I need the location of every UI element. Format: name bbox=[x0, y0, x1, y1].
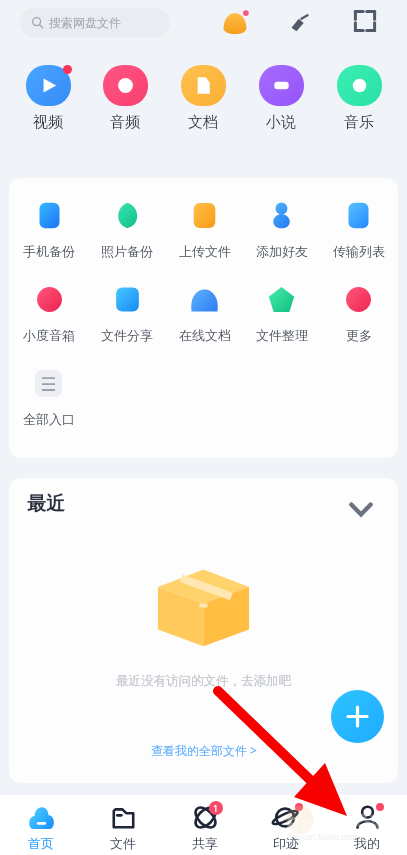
button[interactable]: 文件 bbox=[82, 795, 164, 855]
button[interactable]: 音频 bbox=[86, 43, 164, 148]
staticText: 传输列表 bbox=[333, 243, 385, 259]
button[interactable]: 文档 bbox=[164, 43, 242, 148]
button[interactable]: Clean up bbox=[284, 7, 314, 37]
button[interactable]: 小说 bbox=[242, 43, 320, 148]
staticText: 上传文件 bbox=[179, 243, 231, 259]
staticText: 更多 bbox=[346, 327, 372, 343]
staticText: 搜索网盘文件 bbox=[49, 15, 121, 30]
button[interactable]: 更多 bbox=[320, 286, 397, 343]
button[interactable]: 在线文档 bbox=[166, 286, 243, 343]
button[interactable]: 视频 bbox=[9, 43, 86, 148]
staticText: 共享 bbox=[192, 835, 218, 851]
staticText: 照片备份 bbox=[101, 243, 153, 259]
button[interactable]: 添加好友 bbox=[243, 202, 320, 259]
staticText: 全部入口 bbox=[23, 411, 75, 427]
button[interactable]: 全部入口 bbox=[10, 370, 87, 427]
staticText: 添加好友 bbox=[256, 243, 308, 259]
button[interactable]: 印迹 bbox=[245, 795, 326, 855]
button[interactable]: 传输列表 bbox=[320, 202, 397, 259]
staticText: 文件整理 bbox=[256, 327, 308, 343]
staticText: 我的 bbox=[354, 835, 380, 851]
staticText: 最近 bbox=[27, 492, 65, 516]
button[interactable]: 我的 bbox=[326, 795, 407, 855]
button[interactable]: 文件分享 bbox=[88, 286, 166, 343]
staticText: 文件分享 bbox=[101, 327, 153, 343]
staticText: 1 bbox=[213, 802, 219, 814]
staticText: 首页 bbox=[28, 835, 54, 851]
button[interactable]: 小度音箱 bbox=[10, 286, 88, 343]
staticText: Baidu经验 bbox=[286, 808, 393, 838]
button[interactable]: 首页 bbox=[0, 795, 82, 855]
staticText: 文件 bbox=[110, 835, 136, 851]
staticText: 小度音箱 bbox=[23, 327, 75, 343]
staticText: 查看我的全部文件 > bbox=[151, 742, 257, 758]
button[interactable]: Notifications bbox=[219, 8, 251, 40]
button[interactable]: 手机备份 bbox=[10, 202, 88, 259]
staticText: jingyan.baidu.com bbox=[288, 831, 358, 842]
staticText: 音频 bbox=[110, 113, 140, 132]
button[interactable]: 照片备份 bbox=[88, 202, 166, 259]
button[interactable]: 上传文件 bbox=[166, 202, 243, 259]
button[interactable]: 1 bbox=[164, 795, 245, 855]
staticText: 印迹 bbox=[273, 835, 299, 851]
button[interactable]: 文件整理 bbox=[243, 286, 320, 343]
staticText: 文档 bbox=[188, 113, 218, 132]
staticText: 视频 bbox=[33, 113, 63, 132]
button[interactable]: 搜索网盘文件 bbox=[20, 8, 170, 37]
button[interactable]: Add bbox=[331, 690, 384, 743]
button[interactable]: Scan bbox=[350, 6, 380, 36]
button[interactable]: Expand bbox=[347, 495, 375, 523]
staticText: 音乐 bbox=[344, 113, 374, 132]
staticText: 在线文档 bbox=[179, 327, 231, 343]
staticText: 小说 bbox=[266, 113, 296, 132]
staticText: 最近没有访问的文件，去添加吧 bbox=[116, 673, 291, 689]
staticText: 手机备份 bbox=[23, 243, 75, 259]
button[interactable]: 音乐 bbox=[320, 43, 398, 148]
